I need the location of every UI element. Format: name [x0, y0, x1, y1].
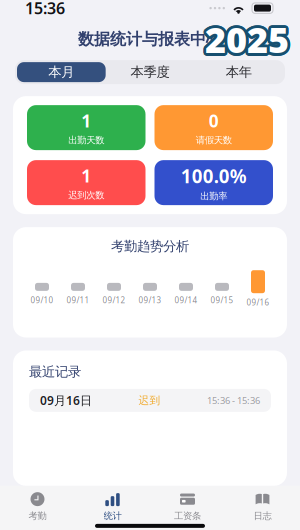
staticText: 2025	[202, 14, 286, 62]
staticText: 09/14	[174, 295, 197, 305]
staticText: 1	[81, 109, 91, 132]
staticText: 出勤率	[200, 190, 227, 202]
staticText: 出勤天数	[68, 134, 104, 146]
staticText: 2025	[206, 13, 290, 60]
staticText: 1	[81, 164, 91, 187]
staticText: 09/15	[210, 295, 233, 305]
staticText: 2025	[207, 17, 291, 65]
staticText: 2025	[204, 13, 288, 60]
staticText: 本年	[226, 64, 252, 80]
staticText: 日志	[253, 510, 271, 522]
staticText: 迟到	[138, 394, 160, 407]
staticText: 最近记录	[29, 363, 81, 380]
staticText: 2025	[205, 18, 289, 66]
staticText: 考勤趋势分析	[111, 238, 189, 254]
staticText: 请假天数	[196, 134, 232, 146]
staticText: 2025	[203, 17, 287, 65]
staticText: 迟到次数	[68, 189, 104, 201]
staticText: 2025	[202, 15, 286, 63]
staticText: 数据统计与报表中心	[78, 29, 222, 49]
staticText: 2025	[208, 16, 292, 64]
staticText: 09/13	[138, 295, 161, 305]
button[interactable]: 考勤	[0, 491, 75, 523]
staticText: 2025	[207, 13, 291, 61]
staticText: 100.0%	[181, 163, 247, 188]
staticText: 15:36 - 15:36	[207, 394, 260, 407]
staticText: 2025	[208, 15, 292, 63]
button[interactable]: 统计	[75, 491, 150, 523]
staticText: 09/12	[102, 295, 125, 305]
staticText: 工资条	[174, 510, 201, 522]
staticText: 2025	[203, 13, 287, 61]
button[interactable]: 09月16日	[29, 389, 271, 412]
staticText: 2025	[205, 12, 289, 60]
staticText: 2025	[206, 18, 290, 66]
button[interactable]: 本年	[194, 62, 283, 82]
staticText: 09/16	[246, 297, 269, 308]
button[interactable]: 本月	[17, 62, 106, 82]
staticText: 本月	[48, 64, 74, 80]
staticText: 09/10	[30, 295, 53, 305]
staticText: 统计	[103, 510, 121, 522]
staticText: 2025	[208, 14, 292, 62]
button[interactable]: 本季度	[106, 62, 194, 82]
staticText: 09/11	[66, 295, 89, 305]
staticText: 0	[209, 109, 219, 132]
staticText: 09月16日	[40, 392, 92, 408]
staticText: 2025	[205, 15, 289, 63]
staticText: 2025	[204, 18, 288, 66]
staticText: 15:36	[25, 0, 65, 19]
button[interactable]: 日志	[225, 491, 300, 523]
staticText: 2025	[202, 16, 286, 64]
staticText: 本季度	[130, 64, 169, 80]
button[interactable]: 工资条	[150, 491, 225, 523]
staticText: 考勤	[28, 510, 46, 522]
